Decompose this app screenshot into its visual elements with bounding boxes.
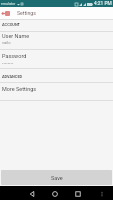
staticText: User Name [2,33,30,39]
button[interactable] [0,82,113,100]
staticText: 4:21 PM [94,1,112,7]
staticText: More Settings [2,86,37,92]
button[interactable]: Navigate up [1,7,5,19]
button[interactable] [0,31,113,50]
staticText: ADVANCED [2,74,23,79]
button[interactable]: Home [50,189,59,198]
button[interactable]: More options [97,189,106,198]
button[interactable]: Recents [73,189,82,198]
staticText: Password [2,53,27,59]
staticText: vailo [2,40,11,45]
staticText: •••••••• [2,61,14,66]
staticText: ACCOUNT [2,22,21,27]
staticText: Settings [17,10,36,16]
button[interactable] [0,49,113,68]
staticText: emulator [1,2,16,6]
button[interactable]: Save [1,170,112,185]
staticText: Save [51,175,63,181]
button[interactable]: Back [27,189,36,198]
